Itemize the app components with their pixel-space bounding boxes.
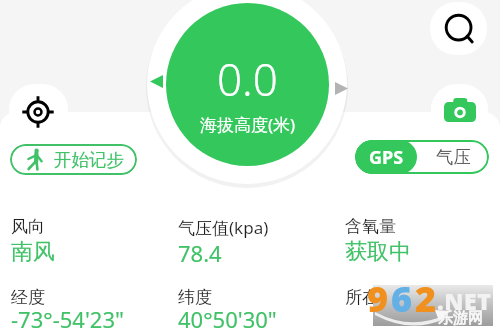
staticText: 经度 <box>11 287 45 308</box>
button[interactable]: 0.0 <box>166 3 329 166</box>
button[interactable]: Camera <box>431 84 488 135</box>
staticText: 获取中 <box>345 238 411 266</box>
button[interactable]: GPS <box>355 140 417 174</box>
button[interactable]: Locate <box>9 84 68 135</box>
staticText: 气压 <box>436 146 471 168</box>
button[interactable]: 开始记步 <box>10 144 137 175</box>
staticText: 40°50'30" <box>178 304 277 333</box>
staticText: 开始记步 <box>54 149 124 171</box>
staticText: 0.0 <box>217 49 278 109</box>
staticText: 乐游网 <box>438 309 483 328</box>
staticText: 含氧量 <box>345 216 396 237</box>
staticText: 78.4 <box>178 238 222 268</box>
staticText: 纬度 <box>178 287 212 308</box>
staticText: 海拔高度(米) <box>200 113 296 136</box>
staticText: 6 <box>391 274 415 315</box>
staticText: 9 <box>367 274 391 315</box>
staticText: -73°-54'23" <box>11 304 125 333</box>
staticText: GPS <box>369 145 404 170</box>
staticText: .NET <box>437 285 492 316</box>
staticText: 南风 <box>11 238 55 266</box>
staticText: 气压值(kpa) <box>178 216 269 239</box>
staticText: 风向 <box>11 216 45 237</box>
staticText: 所在地 <box>345 287 396 308</box>
staticText: 2 <box>415 274 439 315</box>
button[interactable]: Search <box>430 2 487 55</box>
button[interactable]: 气压 <box>417 140 489 174</box>
